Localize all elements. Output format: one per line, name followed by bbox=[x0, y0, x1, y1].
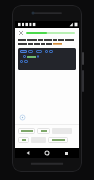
button[interactable]: Word chip bbox=[18, 128, 35, 134]
button[interactable]: Code token bbox=[37, 55, 39, 58]
button[interactable]: Code token bbox=[20, 50, 27, 53]
button[interactable]: Code token bbox=[28, 50, 33, 53]
button[interactable]: Word chip bbox=[37, 128, 50, 134]
button[interactable]: Code token bbox=[24, 60, 28, 63]
button[interactable]: Learn more bbox=[53, 43, 62, 45]
button[interactable]: Word chip bbox=[18, 137, 29, 143]
button[interactable]: Reset bbox=[19, 114, 26, 121]
button[interactable]: Back bbox=[22, 148, 34, 158]
button[interactable]: Code token bbox=[45, 50, 48, 53]
button[interactable]: Code token bbox=[20, 60, 23, 63]
button[interactable]: Home bbox=[41, 148, 53, 158]
button[interactable]: Code token bbox=[36, 50, 42, 53]
button[interactable]: Code token bbox=[23, 55, 26, 58]
button[interactable]: Close bbox=[17, 29, 25, 37]
button[interactable]: Recent apps bbox=[60, 148, 72, 158]
button[interactable]: Word chip bbox=[48, 137, 68, 143]
button[interactable]: Code token bbox=[49, 50, 53, 53]
